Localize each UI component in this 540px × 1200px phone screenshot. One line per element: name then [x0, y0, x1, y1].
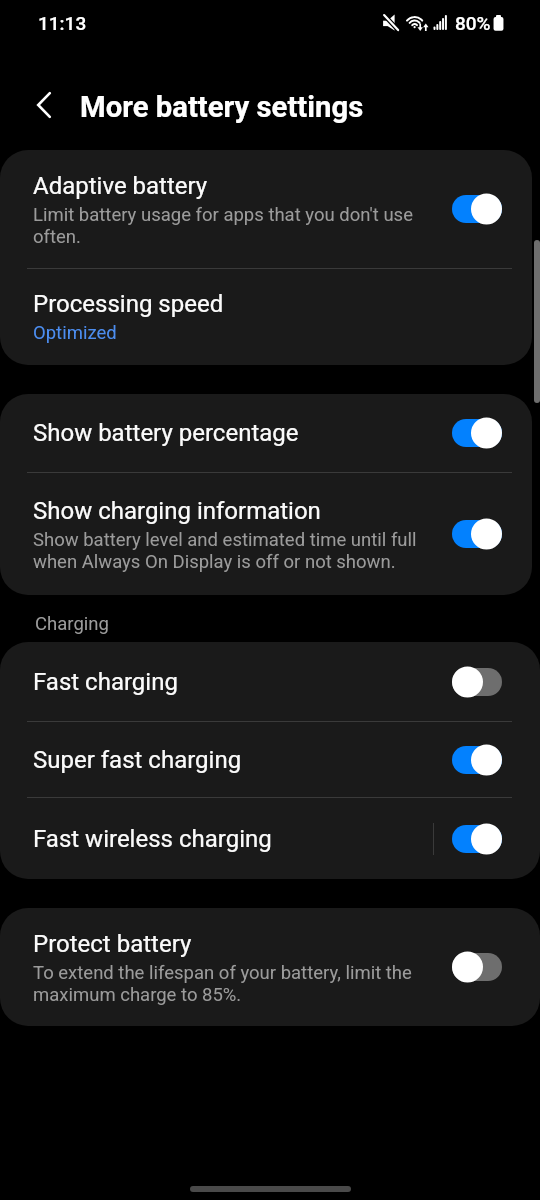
staticText: Protect battery: [33, 930, 192, 958]
other: Sound muted: [380, 11, 400, 33]
staticText: Fast charging: [33, 668, 178, 696]
button[interactable]: Processing speed: [0, 269, 532, 365]
other: Mobile signal: [433, 14, 447, 30]
staticText: Charging: [35, 613, 109, 635]
staticText: Show charging information: [33, 497, 321, 525]
button[interactable]: Protect battery: [445, 941, 509, 993]
staticText: Adaptive battery: [33, 172, 208, 200]
button[interactable]: Show battery percentage: [445, 407, 509, 459]
staticText: 80%: [455, 12, 491, 34]
button[interactable]: Back: [20, 81, 68, 129]
button[interactable]: Show battery percentage: [0, 394, 532, 472]
button[interactable]: Protect battery: [0, 908, 540, 1026]
staticText: Fast wireless charging: [33, 825, 272, 853]
button[interactable]: Super fast charging: [445, 734, 509, 786]
staticText: More battery settings: [80, 90, 364, 124]
button[interactable]: Fast charging: [0, 642, 540, 721]
staticText: Super fast charging: [33, 746, 242, 774]
other: Wi-Fi: [405, 13, 427, 31]
button[interactable]: Fast wireless charging: [0, 798, 540, 879]
button[interactable]: Adaptive battery: [0, 150, 532, 268]
staticText: Optimized: [33, 322, 117, 344]
staticText: Limit battery usage for apps that you do…: [33, 204, 439, 247]
staticText: 11:13: [38, 12, 87, 34]
staticText: To extend the lifespan of your battery, …: [33, 962, 439, 1005]
staticText: Show battery percentage: [33, 419, 299, 447]
button[interactable]: Fast wireless charging: [445, 813, 509, 865]
button[interactable]: Adaptive battery: [445, 183, 509, 235]
button[interactable]: Fast charging: [445, 656, 509, 708]
button[interactable]: Show charging information: [445, 508, 509, 560]
staticText: Show battery level and estimated time un…: [33, 529, 439, 572]
staticText: Processing speed: [33, 290, 224, 318]
button[interactable]: Super fast charging: [0, 722, 540, 797]
button[interactable]: Show charging information: [0, 473, 532, 595]
